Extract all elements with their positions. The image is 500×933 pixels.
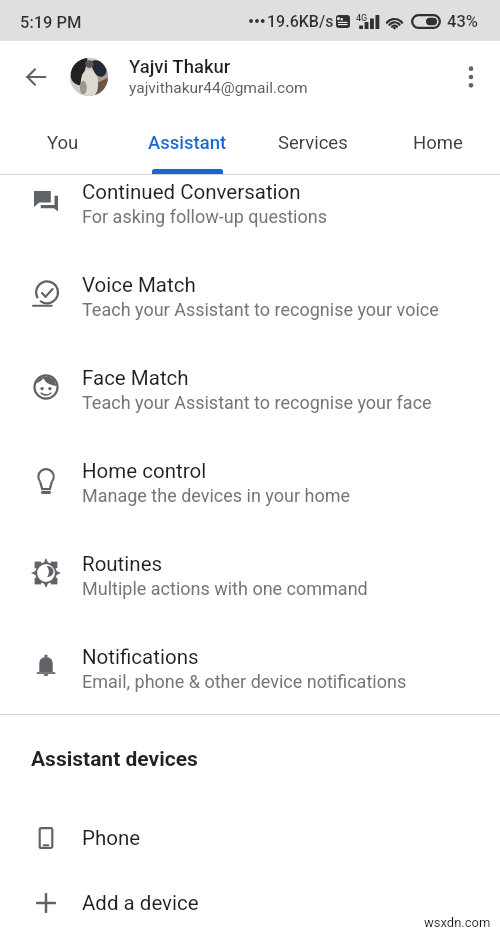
button[interactable]: You	[0, 112, 125, 174]
staticText: Email, phone & other device notification…	[82, 671, 407, 692]
staticText: Teach your Assistant to recognise your v…	[82, 299, 439, 320]
button[interactable]: Back	[13, 54, 59, 100]
staticText: Continued Conversation	[82, 180, 301, 204]
button[interactable]: More options	[449, 55, 493, 99]
button[interactable]: Voice Match	[0, 268, 500, 361]
staticText: For asking follow-up questions	[82, 206, 327, 227]
staticText: 5:19 PM	[20, 13, 82, 32]
staticText: Face Match	[82, 366, 189, 390]
staticText: Notifications	[82, 645, 199, 669]
staticText: Teach your Assistant to recognise your f…	[82, 392, 432, 413]
staticText: Manage the devices in your home	[82, 485, 350, 506]
staticText: Assistant devices	[31, 747, 198, 772]
button[interactable]: Home	[375, 112, 500, 174]
staticText: Add a device	[82, 891, 199, 915]
staticText: Routines	[82, 552, 163, 576]
button[interactable]: Home control	[0, 454, 500, 547]
staticText: You	[47, 132, 79, 154]
staticText: 43%	[447, 12, 478, 31]
staticText: Home control	[82, 459, 207, 483]
staticText: yajvithakur44@gmail.com	[129, 79, 308, 97]
staticText: Services	[278, 132, 348, 154]
staticText: Yajvi Thakur	[129, 56, 231, 78]
staticText: Phone	[82, 826, 141, 850]
staticText: Voice Match	[82, 273, 196, 297]
button[interactable]: Assistant	[125, 112, 250, 174]
staticText: •••	[248, 12, 266, 31]
button[interactable]: Routines	[0, 547, 500, 640]
button[interactable]: Continued Conversation	[0, 175, 500, 268]
staticText: 19.6KB/s	[267, 12, 334, 31]
staticText: wsxdn.com	[424, 915, 491, 930]
button[interactable]: Notifications	[0, 640, 500, 714]
button[interactable]: Face Match	[0, 361, 500, 454]
button[interactable]: Services	[250, 112, 375, 174]
staticText: Assistant	[148, 132, 227, 154]
button[interactable]: Phone	[0, 804, 500, 872]
button[interactable]: Add a device	[0, 872, 500, 933]
staticText: 4G	[356, 13, 368, 24]
staticText: Home	[413, 132, 463, 154]
staticText: Multiple actions with one command	[82, 578, 368, 599]
